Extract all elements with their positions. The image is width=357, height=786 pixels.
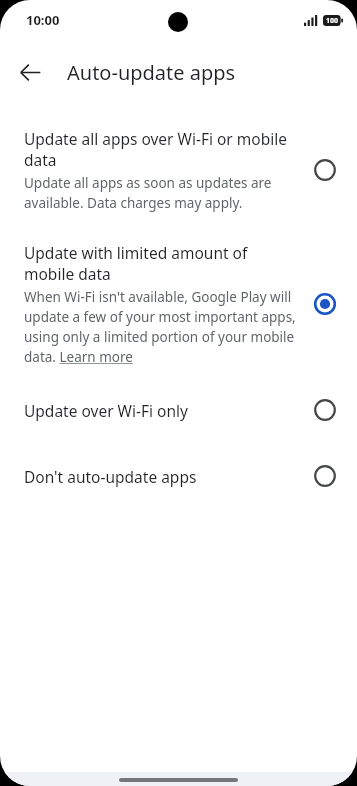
staticText: 10:00	[26, 11, 60, 29]
staticText: Update with limited amount of mobile dat…	[24, 242, 299, 285]
button[interactable]: Update over Wi-Fi only	[0, 398, 357, 422]
button[interactable]: Back	[8, 50, 52, 94]
staticText: Update over Wi-Fi only	[24, 400, 188, 421]
staticText: Update all apps over Wi-Fi or mobile dat…	[24, 128, 299, 171]
button[interactable]: Update with limited amount of mobile dat…	[0, 242, 357, 366]
staticText: 100	[326, 16, 339, 26]
staticText: Auto-update apps	[67, 59, 236, 86]
staticText: Don't auto-update apps	[24, 466, 197, 487]
button[interactable]: Update all apps over Wi-Fi or mobile dat…	[0, 128, 357, 212]
staticText: When Wi-Fi isn't available, Google Play …	[24, 288, 299, 366]
staticText: Update all apps as soon as updates are a…	[24, 174, 299, 212]
button[interactable]: Don't auto-update apps	[0, 464, 357, 488]
